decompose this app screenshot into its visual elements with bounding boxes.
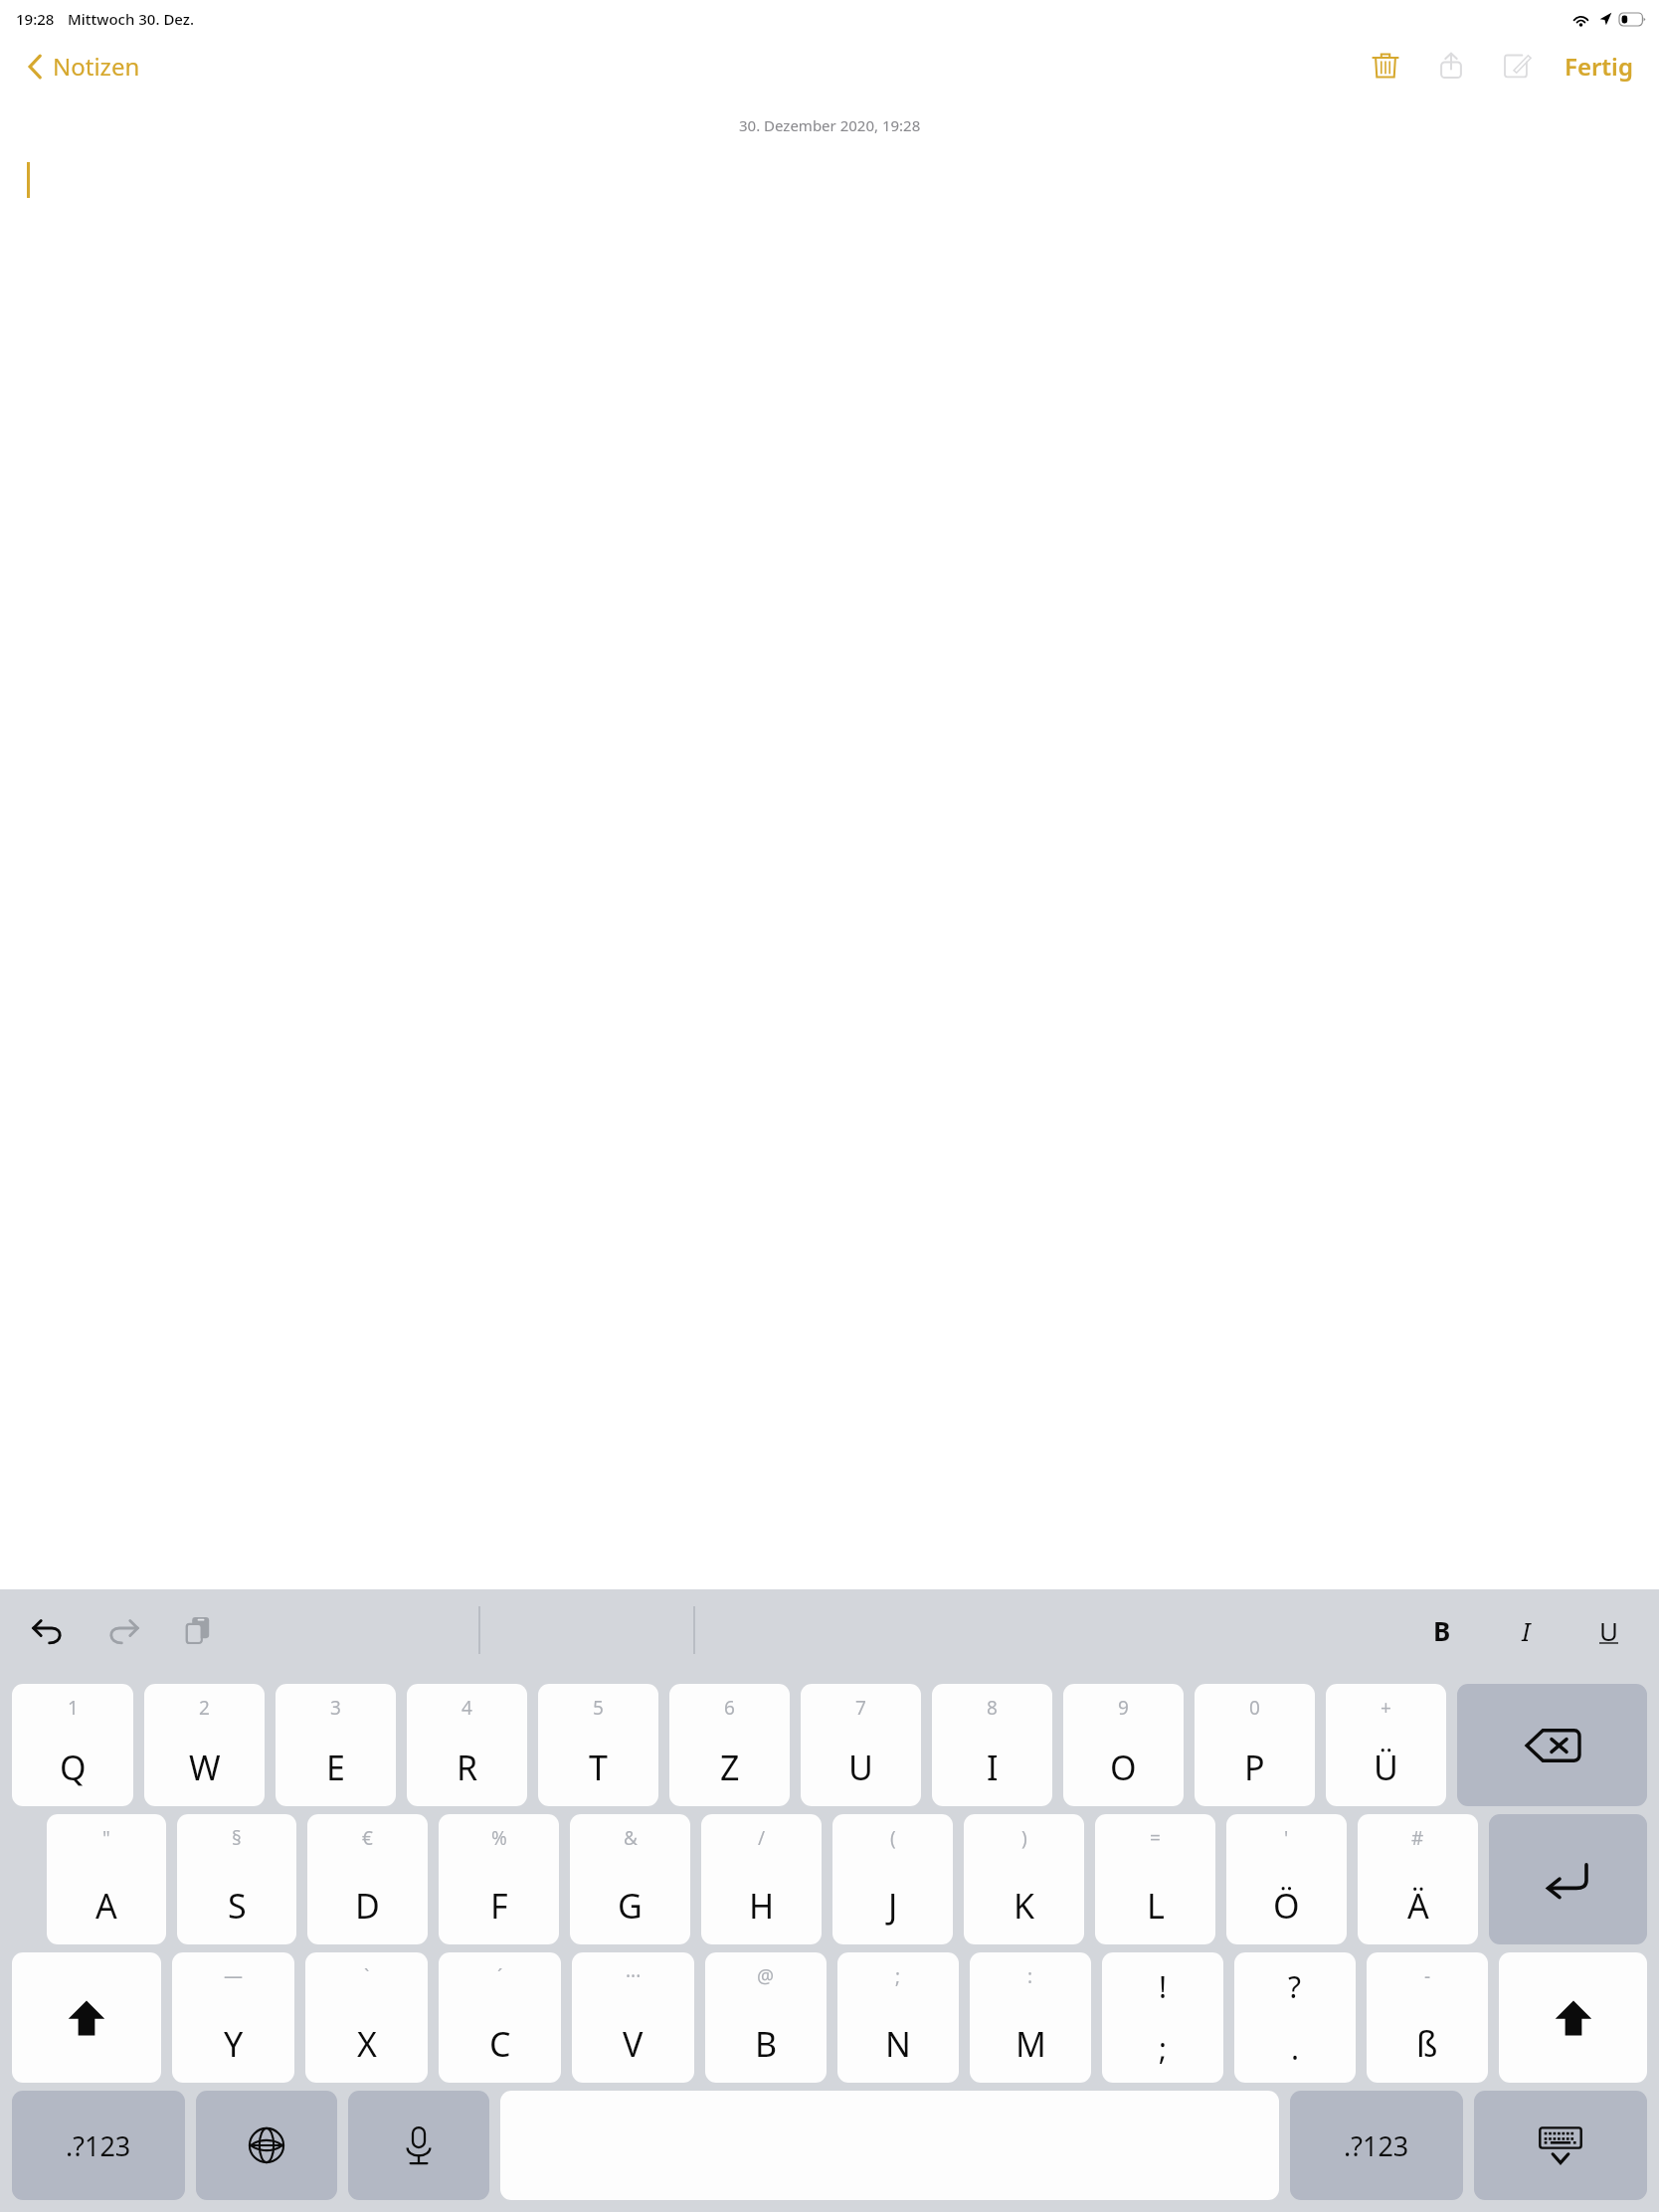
staticText: 6 — [724, 1695, 735, 1721]
staticText: H — [749, 1883, 775, 1929]
button[interactable]: Dictation — [348, 2091, 489, 2200]
button[interactable]: — — [172, 1952, 294, 2083]
button[interactable]: Compose — [1495, 44, 1539, 88]
button[interactable]: ; — [837, 1952, 959, 2083]
staticText: G — [618, 1883, 643, 1929]
staticText: O — [1110, 1745, 1137, 1790]
button[interactable]: & — [570, 1814, 690, 1944]
staticText: ; — [895, 1963, 901, 1989]
staticText: ) — [1021, 1825, 1027, 1851]
staticText: ´ — [497, 1963, 503, 1989]
button[interactable]: Backspace — [1457, 1684, 1647, 1806]
button[interactable]: Shift — [12, 1952, 161, 2083]
staticText: .?123 — [66, 2127, 131, 2164]
staticText: @ — [757, 1963, 775, 1989]
staticText: 19:28 — [16, 9, 55, 29]
button[interactable]: ( — [832, 1814, 953, 1944]
staticText: ß — [1416, 2021, 1438, 2067]
button[interactable]: - — [1367, 1952, 1488, 2083]
staticText: L — [1147, 1883, 1165, 1929]
button[interactable]: Paste — [173, 1604, 225, 1656]
button[interactable]: Hide keyboard — [1474, 2091, 1647, 2200]
staticText: Fertig — [1565, 50, 1633, 83]
button[interactable]: Numbers — [12, 2091, 185, 2200]
staticText: I — [1522, 1613, 1531, 1648]
button[interactable]: § — [177, 1814, 296, 1944]
button[interactable]: Shift — [1499, 1952, 1647, 2083]
staticText: J — [888, 1883, 898, 1929]
button[interactable]: Delete — [1364, 44, 1407, 88]
staticText: U — [1599, 1613, 1619, 1648]
staticText: Ü — [1374, 1745, 1398, 1790]
staticText: Notizen — [53, 50, 140, 83]
staticText: R — [457, 1745, 478, 1790]
button[interactable]: % — [439, 1814, 559, 1944]
staticText: Mittwoch 30. Dez. — [68, 9, 195, 29]
staticText: U — [848, 1745, 873, 1790]
button[interactable]: I — [1502, 1606, 1550, 1654]
button[interactable]: 2 — [144, 1684, 265, 1806]
staticText: C — [489, 2021, 511, 2067]
staticText: V — [623, 2021, 644, 2067]
staticText: T — [589, 1745, 608, 1790]
button[interactable]: 3 — [276, 1684, 396, 1806]
button[interactable]: 5 — [538, 1684, 658, 1806]
button[interactable]: ´ — [439, 1952, 561, 2083]
button[interactable]: 4 — [407, 1684, 527, 1806]
button[interactable]: Undo — [22, 1604, 74, 1656]
button[interactable]: U — [1585, 1606, 1633, 1654]
staticText: D — [355, 1883, 380, 1929]
button[interactable]: " — [47, 1814, 166, 1944]
staticText: = — [1150, 1825, 1161, 1851]
button[interactable]: / — [701, 1814, 822, 1944]
button[interactable]: 7 — [801, 1684, 921, 1806]
button[interactable]: ! — [1102, 1952, 1223, 2083]
button[interactable]: = — [1095, 1814, 1215, 1944]
button[interactable]: 6 — [669, 1684, 790, 1806]
button[interactable]: @ — [705, 1952, 827, 2083]
staticText: Z — [720, 1745, 740, 1790]
staticText: M — [1015, 2021, 1046, 2067]
staticText: ··· — [626, 1963, 642, 1989]
button[interactable]: B — [1418, 1606, 1466, 1654]
staticText: # — [1411, 1825, 1424, 1851]
staticText: % — [491, 1825, 507, 1851]
button[interactable]: € — [307, 1814, 428, 1944]
button[interactable]: 9 — [1063, 1684, 1184, 1806]
button[interactable]: 0 — [1195, 1684, 1315, 1806]
button[interactable]: 8 — [932, 1684, 1052, 1806]
button[interactable]: Redo — [97, 1604, 149, 1656]
staticText: Y — [224, 2021, 244, 2067]
staticText: ` — [364, 1963, 370, 1989]
button[interactable]: ' — [1226, 1814, 1347, 1944]
staticText: 3 — [330, 1695, 341, 1721]
button[interactable]: # — [1358, 1814, 1478, 1944]
button[interactable]: ··· — [572, 1952, 694, 2083]
button[interactable]: Fertig — [1557, 45, 1641, 88]
staticText: S — [228, 1883, 247, 1929]
button[interactable]: Share — [1429, 44, 1473, 88]
staticText: & — [624, 1825, 638, 1851]
staticText: W — [189, 1745, 221, 1790]
button[interactable]: ) — [964, 1814, 1084, 1944]
staticText: 7 — [855, 1695, 866, 1721]
staticText: Ö — [1273, 1883, 1300, 1929]
button[interactable]: : — [970, 1952, 1091, 2083]
button[interactable]: Change language — [196, 2091, 337, 2200]
staticText: 9 — [1118, 1695, 1129, 1721]
button[interactable]: 1 — [12, 1684, 133, 1806]
button[interactable]: Notizen — [22, 46, 146, 87]
button[interactable]: Numbers — [1290, 2091, 1463, 2200]
staticText: " — [102, 1825, 110, 1851]
staticText: - — [1424, 1963, 1431, 1989]
button[interactable]: Return — [1489, 1814, 1647, 1944]
staticText: B — [755, 2021, 778, 2067]
staticText: 8 — [987, 1695, 998, 1721]
button[interactable]: ? — [1234, 1952, 1356, 2083]
staticText: ? — [1288, 1966, 1302, 2007]
staticText: ' — [1284, 1825, 1289, 1851]
button[interactable]: + — [1326, 1684, 1446, 1806]
staticText: ( — [890, 1825, 896, 1851]
button[interactable]: ` — [305, 1952, 428, 2083]
